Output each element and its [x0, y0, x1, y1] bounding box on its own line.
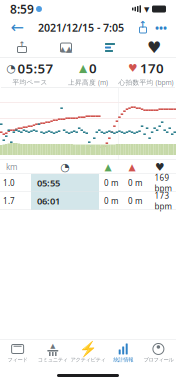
button[interactable]: Share — [134, 17, 152, 37]
staticText: 0 — [89, 59, 97, 77]
staticText: 169 bpm — [154, 172, 171, 194]
button[interactable]: Like — [132, 37, 176, 58]
staticText: ▲ — [104, 162, 111, 172]
staticText: 1.0 — [3, 178, 15, 188]
staticText: ◔ — [6, 62, 15, 74]
staticText: 8:59 — [10, 1, 34, 17]
button[interactable]: フィード — [0, 339, 35, 367]
staticText: プロフィール — [143, 356, 173, 363]
staticText: ▲ — [60, 45, 65, 53]
staticText: 平均ペース — [12, 78, 47, 86]
button[interactable]: プロフィール — [141, 339, 176, 367]
staticText: 2021/12/15 - 7:05 — [38, 20, 124, 35]
button[interactable]: Back — [6, 17, 28, 37]
staticText: ♥ — [147, 38, 161, 57]
staticText: 0 m — [104, 178, 118, 188]
staticText: コミュニティ — [38, 356, 68, 363]
button[interactable]: ▲ — [35, 339, 70, 367]
staticText: 05:57 — [17, 60, 53, 77]
staticText: ◔ — [60, 161, 69, 173]
staticText: 0 m — [128, 178, 142, 188]
staticText: ▲ — [66, 44, 72, 54]
staticText: 170 — [140, 59, 164, 77]
staticText: ▲ — [50, 342, 55, 349]
staticText: ↑ — [18, 40, 25, 49]
button[interactable]: 1.0 — [0, 174, 176, 192]
staticText: ⚡ — [79, 341, 97, 357]
button[interactable]: Export — [0, 37, 44, 58]
staticText: 0 m — [128, 196, 142, 206]
staticText: ← — [10, 18, 23, 37]
staticText: ▲ — [128, 162, 135, 172]
staticText: 05:55 — [37, 177, 60, 189]
button[interactable]: 1.7 — [0, 192, 176, 210]
staticText: 上昇高度 (m) — [68, 78, 108, 87]
button[interactable]: 統計情報 — [106, 339, 141, 367]
staticText: ♥ — [128, 62, 138, 74]
staticText: 1.7 — [3, 196, 15, 206]
button[interactable]: ⚡ — [70, 339, 106, 367]
button[interactable]: Splits — [88, 37, 132, 58]
staticText: アクティビティ — [70, 356, 105, 363]
staticText: 0 m — [104, 196, 118, 206]
staticText: フィード — [8, 356, 28, 363]
staticText: 心拍数平均 (bpm) — [118, 78, 173, 87]
staticText: ••• — [155, 20, 167, 35]
staticText: ▾ — [144, 3, 149, 15]
staticText: 統計情報 — [113, 356, 133, 363]
staticText: ↑ — [139, 19, 147, 30]
staticText: 173 bpm — [154, 190, 171, 212]
staticText: ▲ — [79, 62, 87, 74]
button[interactable]: More — [152, 17, 170, 37]
staticText: ♥ — [155, 161, 165, 173]
staticText: 06:01 — [37, 195, 60, 207]
staticText: km — [6, 162, 17, 172]
button[interactable]: Photos — [44, 37, 88, 58]
